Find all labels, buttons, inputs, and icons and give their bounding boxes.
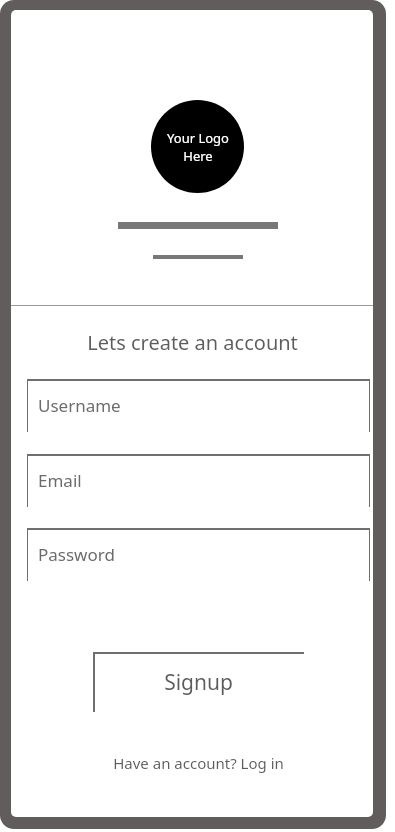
staticText: Password [38,543,115,566]
staticText: Email [38,469,82,492]
button[interactable]: Username [27,379,370,432]
staticText: Have an account? Log in [113,753,284,773]
staticText: Signup [164,668,233,697]
staticText: Username [38,394,121,417]
staticText: Lets create an account [87,329,298,356]
button[interactable]: Signup [93,652,304,712]
button[interactable]: Your Logo [151,100,244,193]
staticText: Your Logo [167,129,229,147]
button[interactable]: Have an account? Log in [93,750,304,776]
button[interactable]: Email [27,454,370,507]
staticText: Here [183,147,213,165]
button[interactable]: Password [27,528,370,581]
